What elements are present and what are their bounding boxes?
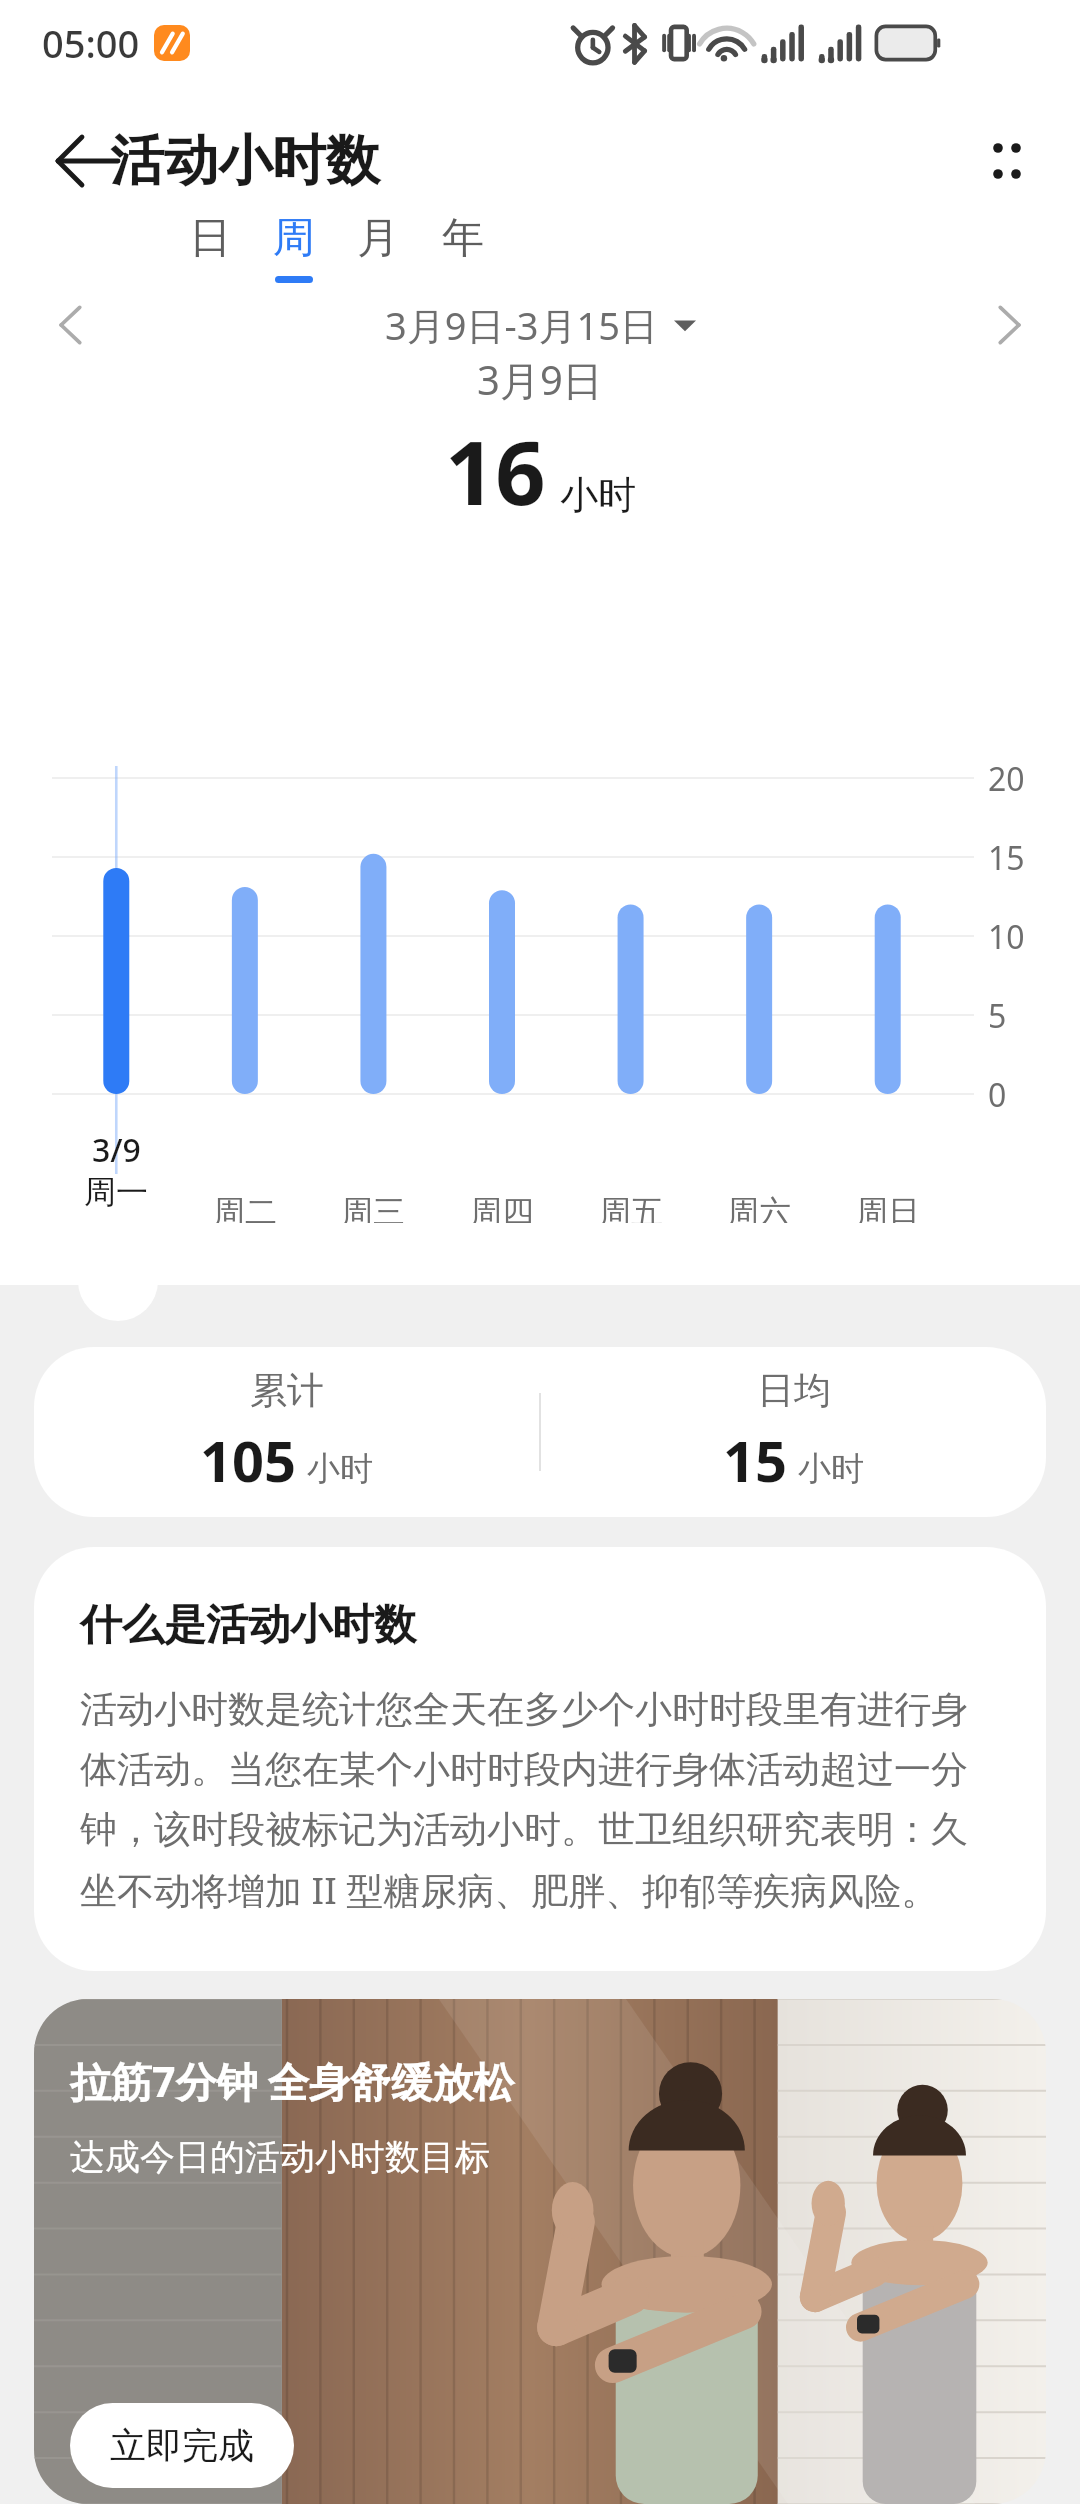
button[interactable]: 周 bbox=[252, 190, 336, 310]
staticText: 周四 bbox=[470, 1192, 534, 1232]
staticText: 05:00 bbox=[42, 17, 140, 69]
staticText: 16 bbox=[445, 411, 546, 531]
button[interactable]: More options bbox=[956, 111, 1056, 211]
staticText: 周日 bbox=[856, 1192, 920, 1232]
staticText: 周二 bbox=[213, 1192, 277, 1232]
staticText: 5 bbox=[988, 994, 1007, 1038]
staticText: 15 bbox=[988, 836, 1025, 880]
staticText: 日 bbox=[189, 212, 231, 265]
staticText: 3/9 bbox=[92, 1128, 141, 1172]
staticText: 日均 bbox=[757, 1367, 831, 1414]
staticText: 活动小时数 bbox=[110, 127, 380, 195]
button[interactable]: 日 bbox=[168, 190, 252, 310]
button[interactable]: 年 bbox=[421, 190, 505, 310]
button[interactable]: 月 bbox=[336, 190, 420, 310]
staticText: 小时 bbox=[560, 471, 636, 519]
staticText: 周三 bbox=[341, 1192, 405, 1232]
staticText: 15 bbox=[723, 1422, 788, 1498]
staticText: 3月9日-3月15日 bbox=[385, 299, 658, 351]
button[interactable]: Previous week bbox=[20, 280, 110, 370]
staticText: 拉筋7分钟 全身舒缓放松 bbox=[70, 2053, 515, 2109]
staticText: 周一 bbox=[84, 1172, 148, 1212]
staticText: 10 bbox=[988, 915, 1025, 959]
staticText: 3月9日 bbox=[477, 352, 603, 407]
staticText: 周五 bbox=[599, 1192, 663, 1232]
staticText: 0 bbox=[988, 1073, 1007, 1117]
staticText: 105 bbox=[200, 1422, 297, 1498]
staticText: 周 bbox=[273, 212, 315, 265]
staticText: 什么是活动小时数 bbox=[80, 1599, 416, 1652]
staticText: 达成今日的活动小时数目标 bbox=[70, 2135, 490, 2179]
staticText: 月 bbox=[357, 212, 399, 265]
button[interactable]: 拉筋7分钟 全身舒缓放松 bbox=[34, 1999, 1046, 2504]
staticText: 立即完成 bbox=[110, 2423, 254, 2468]
button[interactable]: 立即完成 bbox=[70, 2403, 294, 2488]
staticText: 20 bbox=[988, 757, 1025, 801]
button[interactable]: Next week bbox=[970, 280, 1060, 370]
button[interactable]: Back bbox=[38, 111, 138, 211]
staticText: 周六 bbox=[727, 1192, 791, 1232]
staticText: 年 bbox=[442, 212, 484, 265]
staticText: 小时 bbox=[307, 1448, 373, 1490]
staticText: 活动小时数是统计您全天在多少个小时时段里有进行身体活动。当您在某个小时时段内进行… bbox=[80, 1686, 998, 1915]
button[interactable]: 累计 bbox=[34, 1347, 1046, 1517]
staticText: 累计 bbox=[250, 1367, 324, 1414]
staticText: 小时 bbox=[798, 1448, 864, 1490]
